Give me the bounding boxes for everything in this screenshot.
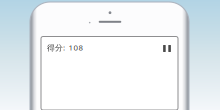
staticText: 108 — [69, 42, 84, 53]
staticText: 得分: — [47, 42, 65, 53]
button[interactable]: Pause — [158, 41, 176, 55]
